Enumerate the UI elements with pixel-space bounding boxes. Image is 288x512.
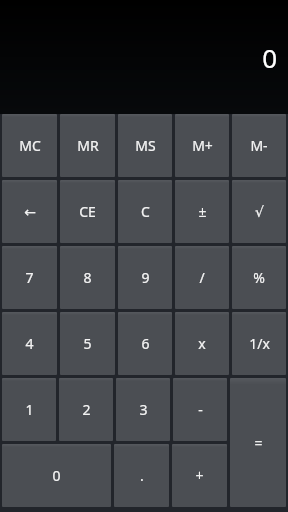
staticText: MS [135, 136, 156, 155]
staticText: MR [77, 136, 99, 155]
button[interactable]: 1/x [232, 312, 286, 375]
button[interactable]: Percent [232, 246, 286, 309]
button[interactable]: 2 [59, 378, 113, 441]
button[interactable]: MR [60, 114, 115, 177]
button[interactable]: MS [118, 114, 172, 177]
staticText: 5 [83, 334, 92, 353]
button[interactable]: Decimal point [114, 444, 169, 507]
button[interactable]: 5 [60, 312, 115, 375]
staticText: √ [255, 204, 264, 220]
button[interactable]: 8 [60, 246, 115, 309]
staticText: 7 [25, 268, 34, 287]
staticText: 8 [83, 268, 92, 287]
staticText: M+ [192, 136, 213, 155]
button[interactable]: CE [60, 180, 115, 243]
button[interactable]: Minus [173, 378, 227, 441]
staticText: 3 [139, 400, 148, 419]
staticText: M- [250, 136, 268, 155]
staticText: ± [198, 202, 207, 221]
staticText: ← [24, 204, 36, 220]
staticText: MC [19, 136, 41, 155]
button[interactable]: Equals [230, 378, 286, 507]
button[interactable]: Divide [175, 246, 229, 309]
staticText: CE [79, 202, 96, 221]
button[interactable]: 6 [118, 312, 172, 375]
button[interactable]: M- [232, 114, 286, 177]
button[interactable]: 9 [118, 246, 172, 309]
button[interactable]: Plus minus [175, 180, 229, 243]
button[interactable]: 1 [2, 378, 56, 441]
staticText: 0 [0, 40, 277, 75]
staticText: 2 [82, 400, 91, 419]
staticText: % [253, 268, 265, 287]
staticText: 4 [25, 334, 34, 353]
button[interactable]: M+ [175, 114, 229, 177]
button[interactable]: Plus [172, 444, 227, 507]
button[interactable]: C [118, 180, 172, 243]
button[interactable]: 0 [2, 444, 111, 507]
staticText: 0 [52, 466, 61, 485]
button[interactable]: MC [2, 114, 57, 177]
staticText: . [140, 466, 144, 485]
staticText: C [141, 202, 150, 221]
staticText: x [198, 334, 206, 353]
button[interactable]: Backspace [2, 180, 57, 243]
staticText: - [198, 400, 203, 419]
staticText: / [199, 268, 205, 287]
staticText: 6 [141, 334, 150, 353]
staticText: 9 [141, 268, 150, 287]
button[interactable]: 4 [2, 312, 57, 375]
staticText: 1 [25, 400, 34, 419]
staticText: = [254, 433, 263, 452]
staticText: 1/x [249, 334, 270, 353]
staticText: + [195, 466, 204, 485]
button[interactable]: Multiply [175, 312, 229, 375]
button[interactable]: Square root [232, 180, 286, 243]
button[interactable]: 3 [116, 378, 170, 441]
button[interactable]: 7 [2, 246, 57, 309]
